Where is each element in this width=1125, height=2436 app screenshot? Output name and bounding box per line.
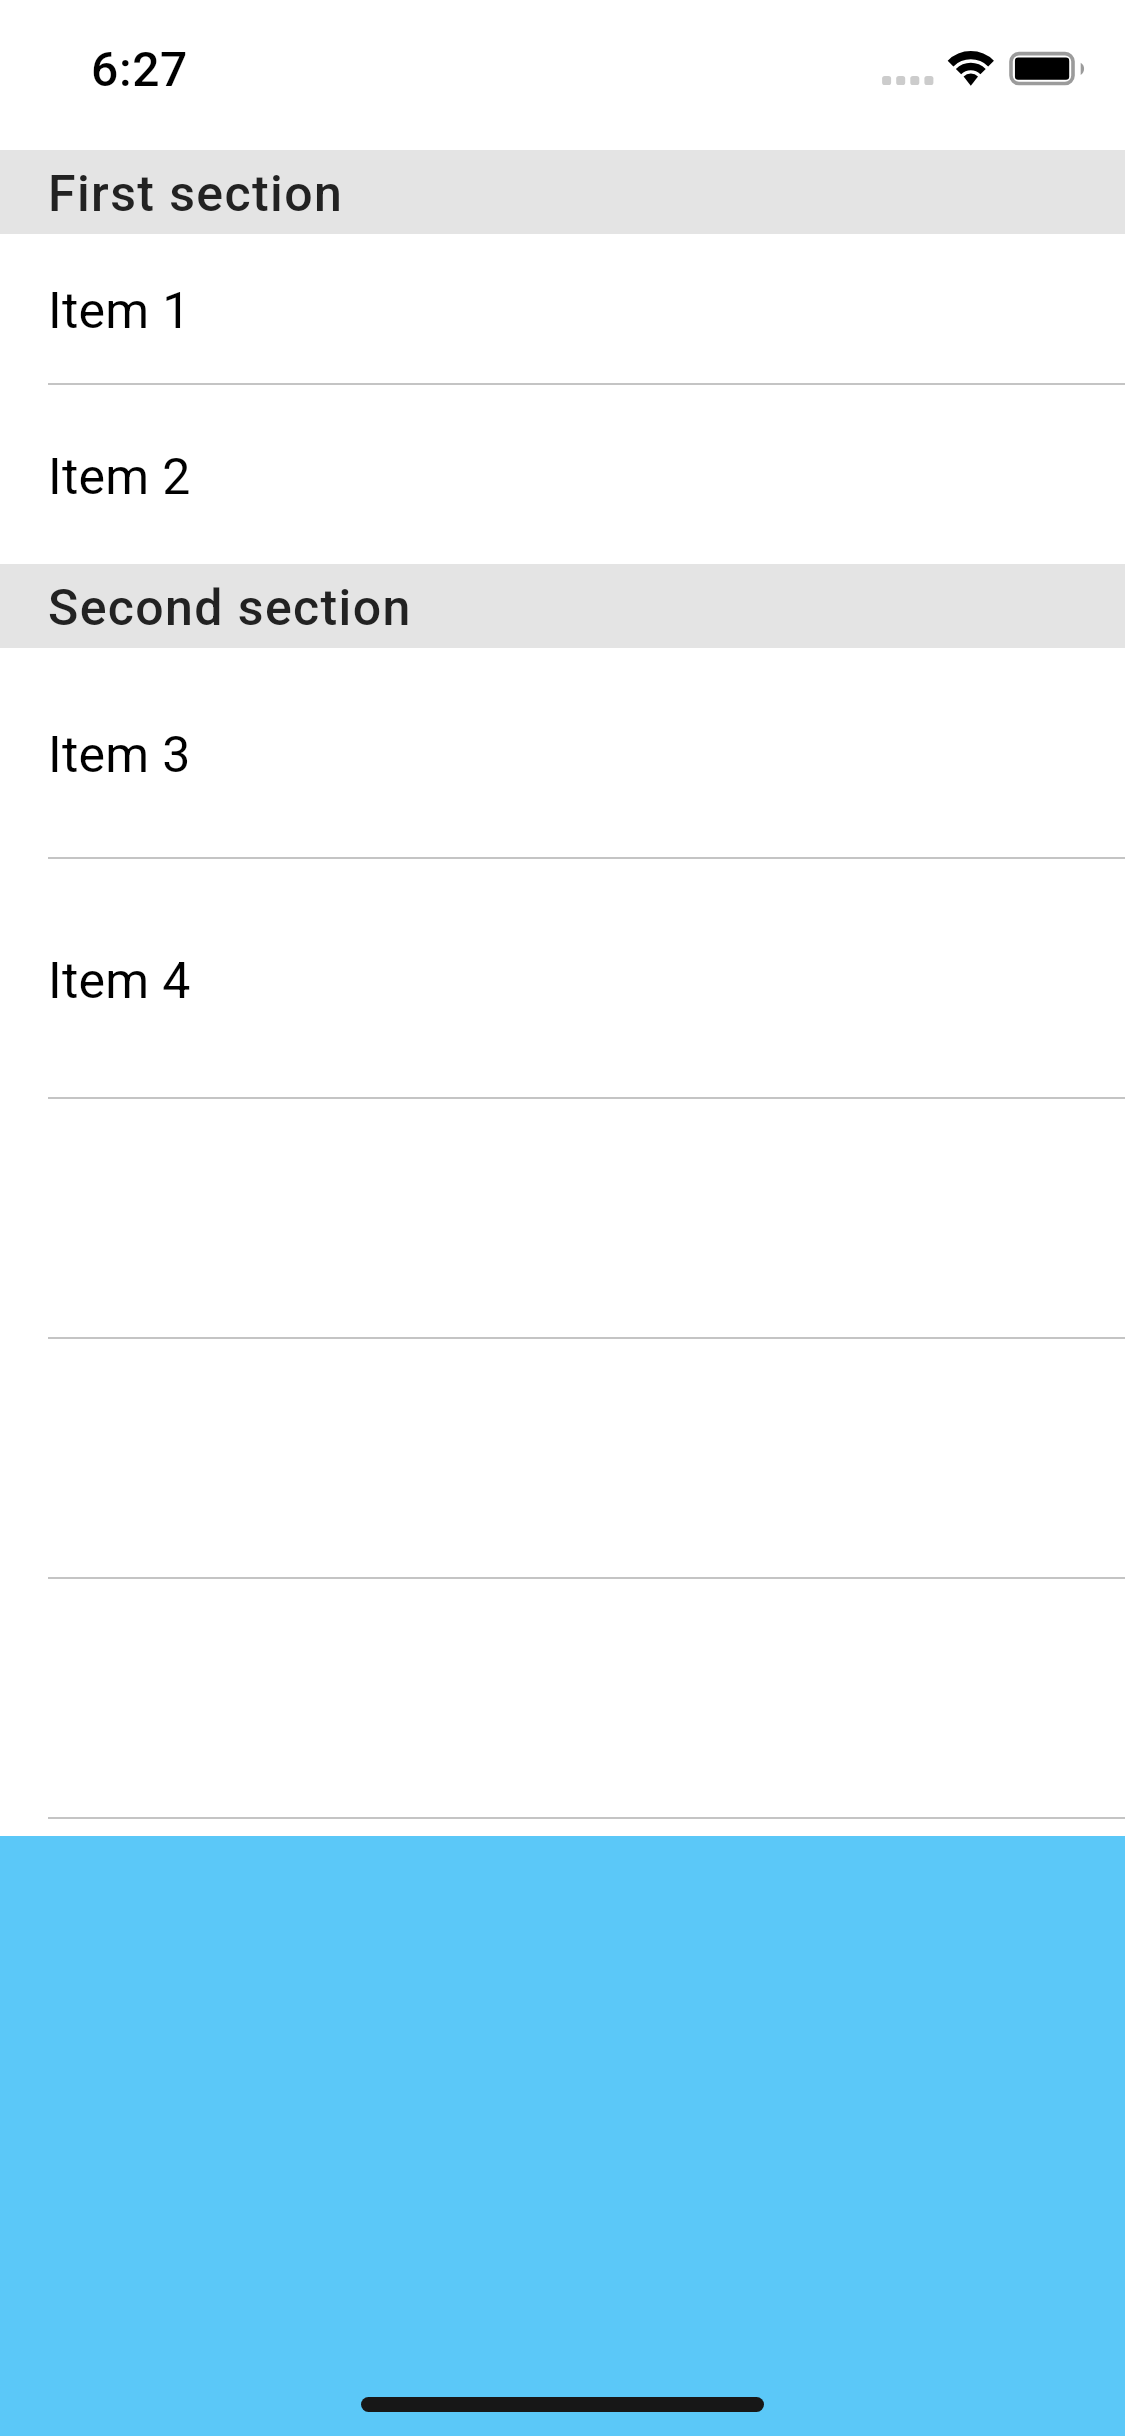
other: Wi-Fi — [937, 46, 1003, 92]
button[interactable]: Item 2 — [0, 385, 1125, 564]
button[interactable]: Item 3 — [0, 648, 1125, 857]
staticText: Second section — [48, 579, 412, 638]
staticText: Item 1 — [48, 282, 191, 341]
other: Battery — [1006, 48, 1086, 90]
button[interactable]: Item 4 — [0, 859, 1125, 1097]
other: Cellular signal — [881, 74, 927, 87]
staticText: First section — [48, 165, 344, 224]
staticText: Item 2 — [48, 448, 191, 507]
staticText: 6:27 — [91, 41, 188, 97]
staticText: Item 4 — [48, 952, 191, 1011]
button[interactable]: Item 1 — [0, 234, 1125, 383]
staticText: Item 3 — [48, 726, 191, 785]
